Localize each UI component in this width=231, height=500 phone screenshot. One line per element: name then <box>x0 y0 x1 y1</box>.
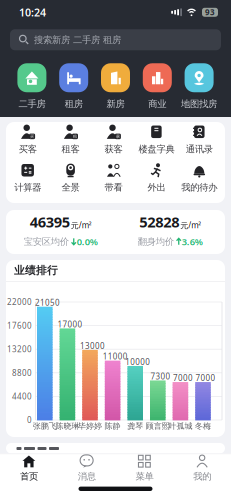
button[interactable]: 二手房 <box>17 63 46 110</box>
button[interactable]: 我的待办 <box>178 163 221 193</box>
staticText: 0.0% <box>77 235 98 248</box>
staticText: 二手房 <box>18 98 45 110</box>
button[interactable]: 计算器 <box>6 163 49 193</box>
staticText: 消息 <box>78 471 96 482</box>
staticText: 新房 <box>106 98 124 110</box>
staticText: 22000 <box>7 297 32 307</box>
staticText: 93 <box>205 7 215 18</box>
staticText: 10000 <box>125 357 150 367</box>
staticText: 元/m² <box>180 220 201 230</box>
staticText: 13200 <box>7 344 32 354</box>
staticText: 11000 <box>103 351 128 362</box>
button[interactable]: 地图找房 <box>181 63 217 110</box>
button[interactable]: 消息 <box>58 455 116 482</box>
staticText: 获客 <box>104 143 122 155</box>
staticText: 租 <box>73 134 77 139</box>
staticText: 7300 <box>150 371 170 382</box>
staticText: 13000 <box>80 340 105 351</box>
button[interactable]: 全景 <box>49 163 92 193</box>
staticText: 地图找房 <box>181 98 217 110</box>
staticText: 冬梅 <box>195 421 211 431</box>
staticText: 我的待办 <box>181 182 217 193</box>
button[interactable]: 租房 <box>59 63 88 110</box>
staticText: 元/m² <box>71 220 92 230</box>
staticText: 买 <box>30 134 34 139</box>
button[interactable]: 商业 <box>143 63 172 110</box>
staticText: 商业 <box>148 98 166 110</box>
staticText: 毕婷婷 <box>78 421 102 431</box>
staticText: 46395 <box>30 212 70 232</box>
staticText: 龚琴 <box>127 421 143 431</box>
staticText: 通讯录 <box>186 143 213 155</box>
staticText: 租房 <box>65 98 83 110</box>
staticText: 楼盘字典 <box>138 143 174 155</box>
button[interactable]: 租 <box>49 124 92 155</box>
staticText: 21050 <box>35 297 60 308</box>
staticText: 7000 <box>173 373 193 383</box>
button[interactable]: 楼盘字典 <box>135 124 178 155</box>
staticText: 4400 <box>12 391 32 402</box>
button[interactable]: 通讯录 <box>178 124 221 155</box>
staticText: 全景 <box>62 182 80 193</box>
staticText: 10:24 <box>19 5 46 19</box>
button[interactable]: 首页 <box>0 455 58 482</box>
staticText: 8800 <box>12 367 32 378</box>
staticText: 17000 <box>57 319 82 330</box>
button[interactable]: 我的 <box>173 455 231 482</box>
staticText: 52828 <box>139 212 179 232</box>
button[interactable]: 菜单 <box>115 455 173 482</box>
staticText: 菜单 <box>135 471 153 482</box>
staticText: 7000 <box>196 373 216 383</box>
button[interactable]: 外出 <box>135 163 178 193</box>
button[interactable]: 搜索新房 二手房 租房 <box>10 29 221 50</box>
button[interactable]: 带看 <box>92 163 135 193</box>
staticText: 翻身均价 <box>138 236 174 247</box>
staticText: 3.6% <box>182 235 203 248</box>
staticText: 叶孤城 <box>168 421 192 431</box>
staticText: 陈静 <box>105 421 121 431</box>
staticText: 带看 <box>104 182 122 193</box>
staticText: 租客 <box>62 143 80 155</box>
staticText: 计算器 <box>14 182 41 193</box>
button[interactable]: 买 <box>6 124 49 155</box>
staticText: 外出 <box>147 182 165 193</box>
staticText: 陈晓琳 <box>55 421 79 431</box>
button[interactable]: 新房 <box>101 63 130 110</box>
staticText: 0 <box>27 415 32 425</box>
staticText: 搜索新房 二手房 租房 <box>34 34 121 45</box>
staticText: 张鹏飞 <box>33 421 57 431</box>
staticText: 17600 <box>7 320 32 331</box>
staticText: 业绩排行 <box>14 264 58 277</box>
staticText: 宝安区均价 <box>24 236 69 247</box>
button[interactable]: 获 <box>92 124 135 155</box>
staticText: 获 <box>116 134 120 139</box>
staticText: 顾言熙 <box>146 421 170 431</box>
staticText: 我的 <box>193 471 211 482</box>
staticText: 买客 <box>19 143 37 155</box>
staticText: 首页 <box>20 471 38 482</box>
